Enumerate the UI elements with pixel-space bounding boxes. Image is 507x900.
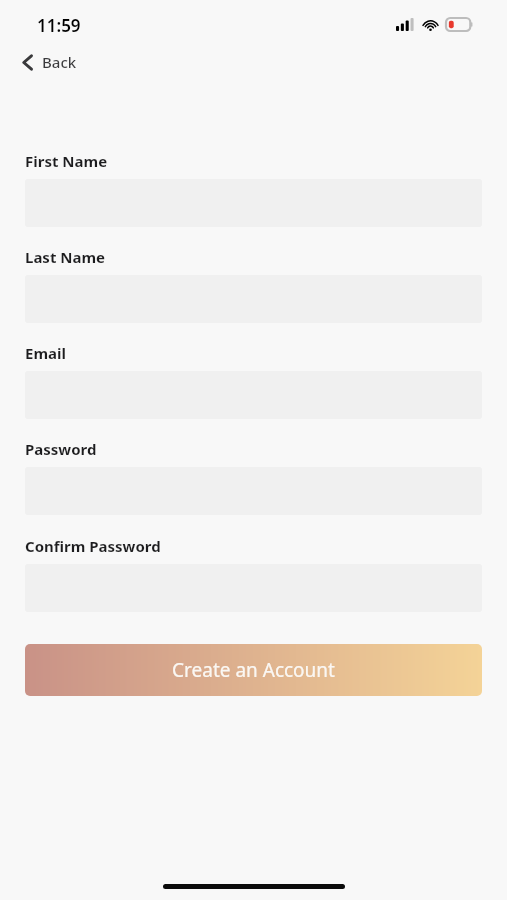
staticText: Email [25, 343, 66, 363]
button[interactable]: Back [14, 48, 85, 76]
button[interactable]: Create an Account [25, 644, 482, 696]
staticText: Create an Account [172, 657, 335, 683]
staticText: First Name [25, 151, 108, 171]
staticText: Last Name [25, 247, 106, 267]
staticText: 11:59 [37, 14, 81, 37]
staticText: Password [25, 439, 97, 459]
staticText: Confirm Password [25, 536, 161, 556]
staticText: Back [42, 52, 77, 72]
